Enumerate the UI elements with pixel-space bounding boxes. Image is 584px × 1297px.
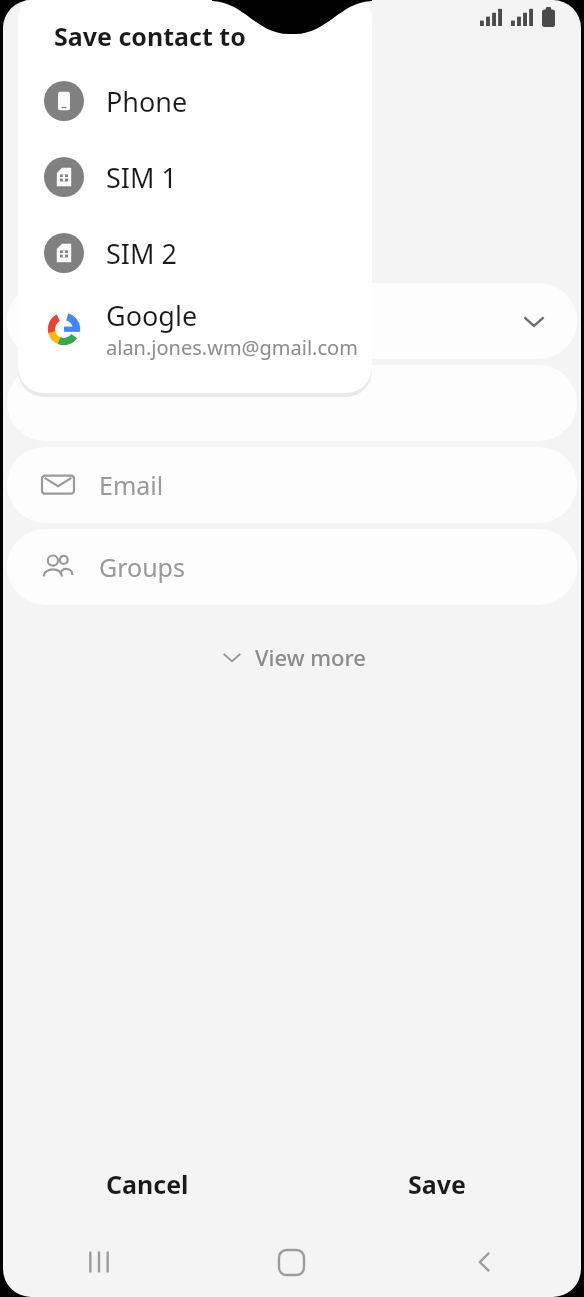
staticText: Groups xyxy=(99,550,185,584)
staticText: Save xyxy=(408,1167,466,1201)
button[interactable]: Cancel xyxy=(3,1141,292,1227)
button[interactable]: Phone xyxy=(18,63,372,139)
button[interactable] xyxy=(7,365,577,441)
staticText: 10:00 xyxy=(33,4,85,31)
button[interactable]: Save xyxy=(292,1141,581,1227)
staticText: Phone xyxy=(106,83,188,120)
staticText: SIM 2 xyxy=(106,235,177,272)
button[interactable]: Google xyxy=(18,291,372,367)
button[interactable]: SIM 1 xyxy=(18,139,372,215)
button[interactable]: Email xyxy=(7,447,577,523)
staticText: alan.jones.wm@gmail.com xyxy=(106,334,358,361)
staticText: Google xyxy=(106,297,198,334)
button[interactable]: Back xyxy=(388,1227,581,1297)
staticText: View more xyxy=(255,642,366,672)
button[interactable]: SIM 2 xyxy=(18,215,372,291)
button[interactable]: Groups xyxy=(7,529,577,605)
staticText: Email xyxy=(99,468,164,502)
button[interactable] xyxy=(7,283,577,359)
staticText: SIM 1 xyxy=(106,159,177,196)
button[interactable]: Recent apps xyxy=(3,1227,195,1297)
staticText: Save contact to xyxy=(54,19,246,53)
staticText: Cancel xyxy=(106,1167,189,1201)
button[interactable]: View more xyxy=(3,631,581,683)
button[interactable]: Home xyxy=(195,1227,388,1297)
